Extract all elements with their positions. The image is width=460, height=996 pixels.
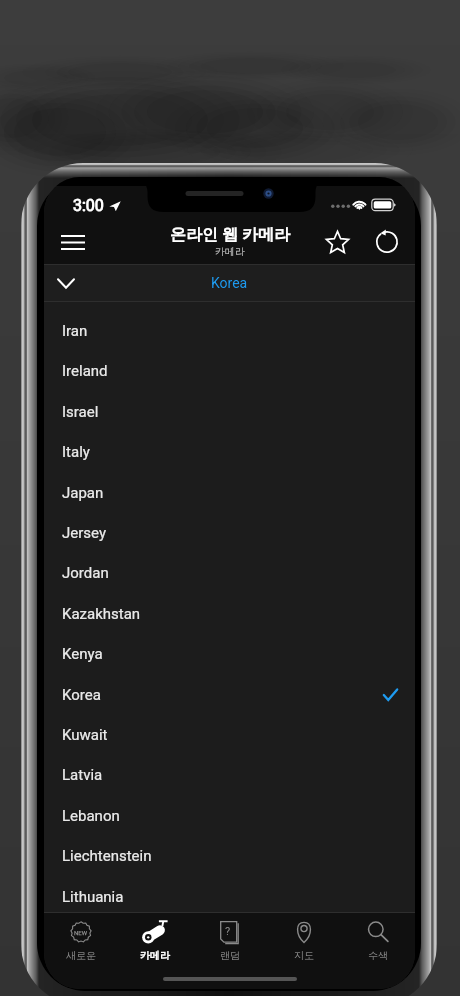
staticText: 수색 (368, 949, 388, 962)
button[interactable]: Jordan (44, 553, 415, 593)
staticText: NEW (74, 929, 88, 936)
button[interactable]: Favorite (315, 220, 359, 264)
button[interactable]: Kuwait (44, 715, 415, 755)
staticText: Italy (62, 443, 90, 461)
staticText: 랜덤 (220, 949, 240, 962)
button[interactable]: 수색 (341, 913, 415, 962)
staticText: Ireland (62, 362, 108, 380)
staticText: 새로운 (66, 949, 96, 962)
button[interactable]: Refresh (365, 220, 409, 264)
button[interactable]: Lithuania (44, 877, 415, 917)
button[interactable]: NEW (44, 913, 118, 962)
staticText: 3:00 (73, 196, 104, 215)
staticText: Kenya (62, 645, 103, 663)
staticText: Lebanon (62, 807, 120, 825)
staticText: 카메라 (215, 245, 245, 258)
button[interactable]: Kenya (44, 634, 415, 674)
button[interactable]: Japan (44, 473, 415, 513)
button[interactable]: Korea (44, 675, 415, 715)
button[interactable]: Latvia (44, 755, 415, 795)
button[interactable]: Liechtenstein (44, 836, 415, 876)
staticText: Latvia (62, 766, 103, 784)
button[interactable]: Lebanon (44, 796, 415, 836)
button[interactable]: Jersey (44, 513, 415, 553)
button[interactable]: Select country (44, 265, 415, 301)
button[interactable]: Kazakhstan (44, 594, 415, 634)
button[interactable]: Italy (44, 432, 415, 472)
staticText: Japan (62, 484, 104, 502)
staticText: Lithuania (62, 888, 124, 906)
staticText: Kuwait (62, 726, 108, 744)
staticText: Israel (62, 403, 99, 421)
button[interactable]: 지도 (267, 913, 341, 962)
staticText: Kazakhstan (62, 605, 141, 623)
button[interactable]: Iran (44, 311, 415, 351)
staticText: 지도 (294, 949, 314, 962)
staticText: Liechtenstein (62, 847, 152, 865)
button[interactable]: Ireland (44, 351, 415, 391)
staticText: Jersey (62, 524, 107, 542)
button[interactable]: 카메라 (118, 913, 192, 962)
staticText: Korea (62, 686, 101, 704)
button[interactable]: Menu (51, 220, 95, 264)
staticText: Jordan (62, 564, 109, 582)
staticText: 카메라 (140, 949, 170, 962)
staticText: 온라인 웹 카메라 (170, 225, 290, 245)
staticText: Korea (211, 275, 248, 291)
button[interactable]: ? (193, 913, 267, 962)
staticText: Iran (62, 322, 88, 340)
button[interactable]: Israel (44, 392, 415, 432)
staticText: ? (225, 925, 231, 938)
